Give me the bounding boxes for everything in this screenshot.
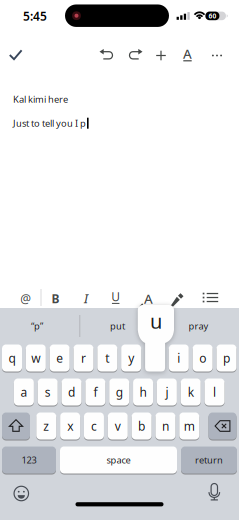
staticText: 60 bbox=[208, 11, 216, 20]
staticText: put bbox=[110, 320, 125, 332]
staticText: l bbox=[213, 384, 216, 400]
button[interactable]: k bbox=[181, 378, 201, 406]
staticText: p bbox=[223, 350, 230, 366]
button[interactable]: Insert bbox=[150, 44, 172, 66]
staticText: Just to tell you I p bbox=[13, 117, 86, 129]
button[interactable]: Emoji bbox=[11, 483, 31, 503]
staticText: A bbox=[183, 45, 192, 62]
button[interactable]: Text color bbox=[137, 288, 157, 308]
button[interactable]: q bbox=[2, 344, 22, 372]
staticText: c bbox=[91, 418, 97, 434]
staticText: w bbox=[31, 350, 40, 366]
staticText: k bbox=[188, 384, 194, 400]
staticText: s bbox=[45, 384, 51, 400]
staticText: I bbox=[84, 290, 88, 306]
button[interactable]: Highlight bbox=[166, 287, 188, 309]
staticText: return bbox=[195, 454, 223, 466]
button[interactable]: c bbox=[84, 412, 104, 440]
staticText: Kal kimi here bbox=[13, 93, 68, 105]
button[interactable]: f bbox=[85, 378, 105, 406]
button[interactable]: p bbox=[216, 344, 236, 372]
staticText: 123 bbox=[21, 454, 36, 466]
button[interactable]: Done bbox=[0, 0, 239, 70]
button[interactable]: l bbox=[204, 378, 224, 406]
button[interactable]: put bbox=[87, 311, 147, 341]
button[interactable]: j bbox=[157, 378, 177, 406]
button[interactable]: g bbox=[109, 378, 129, 406]
button[interactable]: 123 bbox=[2, 446, 56, 474]
staticText: b bbox=[138, 418, 145, 434]
staticText: f bbox=[93, 384, 97, 400]
button[interactable]: w bbox=[26, 344, 46, 372]
staticText: q bbox=[8, 350, 15, 366]
button[interactable]: space bbox=[60, 446, 177, 474]
button[interactable]: “p” bbox=[2, 311, 72, 341]
button[interactable]: m bbox=[179, 412, 199, 440]
button[interactable]: y bbox=[121, 344, 141, 372]
button[interactable]: n bbox=[155, 412, 175, 440]
button[interactable]: z bbox=[36, 412, 56, 440]
button[interactable]: s bbox=[38, 378, 58, 406]
button[interactable]: return bbox=[181, 446, 237, 474]
staticText: A bbox=[144, 290, 153, 307]
staticText: j bbox=[165, 384, 168, 400]
button[interactable]: o bbox=[193, 344, 213, 372]
button[interactable]: r bbox=[73, 344, 93, 372]
staticText: n bbox=[162, 418, 169, 434]
button[interactable]: Redo bbox=[123, 44, 145, 66]
button[interactable]: a bbox=[14, 378, 34, 406]
staticText: space bbox=[106, 454, 130, 466]
button[interactable]: e bbox=[50, 344, 70, 372]
button[interactable]: Dictate bbox=[204, 482, 224, 504]
staticText: t bbox=[105, 350, 109, 366]
staticText: e bbox=[56, 350, 63, 366]
button[interactable]: d bbox=[62, 378, 82, 406]
button[interactable]: Bold bbox=[45, 288, 65, 308]
staticText: “p” bbox=[31, 320, 43, 332]
button[interactable]: x bbox=[60, 412, 80, 440]
staticText: v bbox=[115, 418, 121, 434]
button[interactable]: b bbox=[132, 412, 152, 440]
button[interactable]: Delete bbox=[208, 412, 236, 440]
staticText: d bbox=[68, 384, 75, 400]
button[interactable]: Mention bbox=[16, 288, 36, 308]
button[interactable]: Shift bbox=[2, 412, 30, 440]
button[interactable]: t bbox=[97, 344, 117, 372]
staticText: o bbox=[199, 350, 206, 366]
staticText: i bbox=[177, 350, 180, 366]
button[interactable]: v bbox=[108, 412, 128, 440]
staticText: g bbox=[116, 384, 123, 400]
button[interactable]: Underline bbox=[106, 288, 126, 308]
staticText: 5:45 bbox=[23, 8, 47, 24]
button[interactable]: i bbox=[169, 344, 189, 372]
staticText: x bbox=[67, 418, 73, 434]
staticText: h bbox=[139, 384, 146, 400]
staticText: y bbox=[128, 350, 134, 366]
button[interactable]: Bulleted list bbox=[199, 286, 221, 308]
staticText: a bbox=[20, 384, 27, 400]
staticText: B bbox=[51, 290, 59, 306]
staticText: u bbox=[150, 308, 162, 334]
staticText: z bbox=[43, 418, 49, 434]
button[interactable]: More options bbox=[206, 44, 228, 66]
staticText: r bbox=[81, 350, 86, 366]
staticText: m bbox=[184, 418, 195, 434]
staticText: U bbox=[111, 289, 120, 304]
button[interactable]: Format text bbox=[176, 44, 198, 66]
staticText: pray bbox=[188, 320, 208, 332]
button[interactable]: Undo bbox=[96, 44, 118, 66]
button[interactable]: pray bbox=[163, 311, 233, 341]
staticText: @ bbox=[20, 290, 31, 306]
button[interactable]: h bbox=[133, 378, 153, 406]
button[interactable]: Italic bbox=[76, 288, 96, 308]
